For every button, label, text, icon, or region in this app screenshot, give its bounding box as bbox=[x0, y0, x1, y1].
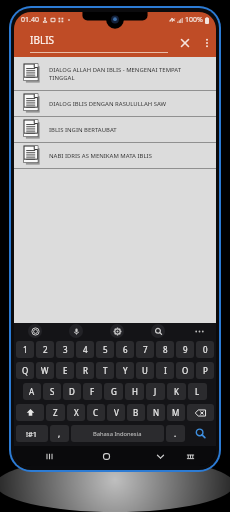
button[interactable]: N bbox=[147, 404, 165, 421]
staticText: W bbox=[41, 365, 49, 376]
button[interactable]: Keyboard layout bbox=[181, 447, 199, 465]
staticText: 01.40 bbox=[21, 15, 39, 25]
staticText: C bbox=[93, 407, 99, 418]
staticText: S bbox=[50, 386, 55, 397]
button[interactable]: Keyboard settings bbox=[110, 324, 124, 338]
staticText: B bbox=[133, 407, 139, 418]
button[interactable]: T bbox=[96, 362, 114, 379]
button[interactable]: G bbox=[104, 383, 123, 400]
staticText: 5 bbox=[103, 344, 108, 355]
button[interactable]: Backspace bbox=[187, 404, 214, 421]
button[interactable]: D bbox=[63, 383, 81, 400]
staticText: N bbox=[153, 407, 160, 418]
staticText: 4 bbox=[83, 344, 88, 355]
button[interactable]: P bbox=[196, 362, 214, 379]
button[interactable]: Search bbox=[187, 425, 214, 442]
button[interactable]: 5 bbox=[96, 341, 114, 358]
staticText: IBLIS INGIN BERTAUBAT bbox=[49, 126, 117, 134]
button[interactable]: 1 bbox=[16, 341, 34, 358]
button[interactable]: S bbox=[43, 383, 61, 400]
staticText: H bbox=[132, 386, 138, 397]
button[interactable]: , bbox=[50, 425, 69, 442]
button[interactable]: H bbox=[125, 383, 144, 400]
button[interactable]: More bbox=[192, 324, 206, 338]
button[interactable]: Emoji bbox=[28, 324, 42, 338]
staticText: K bbox=[174, 386, 179, 397]
button[interactable]: O bbox=[176, 362, 194, 379]
button[interactable]: 6 bbox=[116, 341, 134, 358]
staticText: L bbox=[195, 386, 200, 397]
button[interactable]: DIALOG IBLIS DENGAN RASULULLAH SAW bbox=[14, 91, 216, 116]
button[interactable]: Voice input bbox=[69, 324, 83, 338]
staticText: G bbox=[111, 386, 117, 397]
staticText: Y bbox=[123, 365, 128, 376]
button[interactable]: 2 bbox=[36, 341, 54, 358]
button[interactable]: Recent apps bbox=[40, 447, 58, 465]
staticText: F bbox=[90, 386, 95, 397]
button[interactable]: 4 bbox=[76, 341, 94, 358]
staticText: J bbox=[154, 386, 157, 397]
button[interactable]: Y bbox=[116, 362, 134, 379]
button[interactable]: 9 bbox=[176, 341, 194, 358]
button[interactable]: X bbox=[67, 404, 85, 421]
staticText: 2 bbox=[43, 344, 48, 355]
button[interactable]: I bbox=[156, 362, 174, 379]
staticText: A bbox=[29, 386, 35, 397]
staticText: . bbox=[174, 428, 177, 439]
staticText: V bbox=[114, 407, 119, 418]
staticText: 100% bbox=[185, 15, 203, 25]
button[interactable]: J bbox=[146, 383, 165, 400]
button[interactable]: W bbox=[36, 362, 54, 379]
button[interactable]: A bbox=[23, 383, 41, 400]
staticText: R bbox=[83, 365, 88, 376]
button[interactable]: 8 bbox=[156, 341, 174, 358]
staticText: T bbox=[103, 365, 108, 376]
staticText: M bbox=[172, 407, 180, 418]
button[interactable]: B bbox=[127, 404, 145, 421]
button[interactable]: 3 bbox=[56, 341, 74, 358]
staticText: 8 bbox=[163, 344, 168, 355]
staticText: 3 bbox=[63, 344, 68, 355]
button[interactable]: V bbox=[107, 404, 125, 421]
staticText: 7 bbox=[143, 344, 148, 355]
staticText: DIALOG ALLAH DAN IBLIS - MENGENAI TEMPAT… bbox=[49, 66, 208, 82]
button[interactable]: Hide keyboard bbox=[151, 447, 169, 465]
button[interactable]: Clear search bbox=[172, 28, 198, 57]
staticText: 9 bbox=[183, 344, 188, 355]
button[interactable]: NABI IDRIS AS MENIKAM MATA IBLIS bbox=[14, 143, 216, 168]
button[interactable]: E bbox=[56, 362, 74, 379]
staticText: D bbox=[69, 386, 75, 397]
button[interactable]: Home bbox=[97, 447, 115, 465]
staticText: O bbox=[182, 365, 189, 376]
button[interactable]: Z bbox=[46, 404, 65, 421]
staticText: X bbox=[74, 407, 79, 418]
staticText: 6 bbox=[123, 344, 128, 355]
button[interactable]: Bahasa Indonesia bbox=[71, 425, 164, 442]
button[interactable]: R bbox=[76, 362, 94, 379]
staticText: Bahasa Indonesia bbox=[93, 430, 142, 438]
staticText: I bbox=[164, 365, 167, 376]
button[interactable]: F bbox=[83, 383, 102, 400]
button[interactable]: C bbox=[87, 404, 105, 421]
button[interactable]: Search bbox=[151, 324, 165, 338]
button[interactable]: U bbox=[136, 362, 154, 379]
staticText: NABI IDRIS AS MENIKAM MATA IBLIS bbox=[49, 152, 152, 160]
button[interactable]: 7 bbox=[136, 341, 154, 358]
staticText: !#1 bbox=[26, 429, 38, 439]
button[interactable]: IBLIS INGIN BERTAUBAT bbox=[14, 117, 216, 142]
button[interactable]: Shift bbox=[16, 404, 44, 421]
button[interactable]: !#1 bbox=[16, 425, 48, 442]
button[interactable]: 0 bbox=[196, 341, 214, 358]
button[interactable]: L bbox=[188, 383, 207, 400]
button[interactable]: . bbox=[166, 425, 185, 442]
staticText: , bbox=[58, 428, 61, 439]
button[interactable]: M bbox=[167, 404, 185, 421]
staticText: 0 bbox=[203, 344, 208, 355]
button[interactable]: K bbox=[167, 383, 186, 400]
staticText: 1 bbox=[23, 344, 28, 355]
button[interactable]: DIALOG ALLAH DAN IBLIS - MENGENAI TEMPAT… bbox=[14, 57, 216, 90]
button[interactable]: Q bbox=[16, 362, 34, 379]
button[interactable]: IBLIS bbox=[14, 28, 172, 57]
staticText: DIALOG IBLIS DENGAN RASULULLAH SAW bbox=[49, 100, 167, 108]
button[interactable]: More options bbox=[198, 28, 216, 57]
